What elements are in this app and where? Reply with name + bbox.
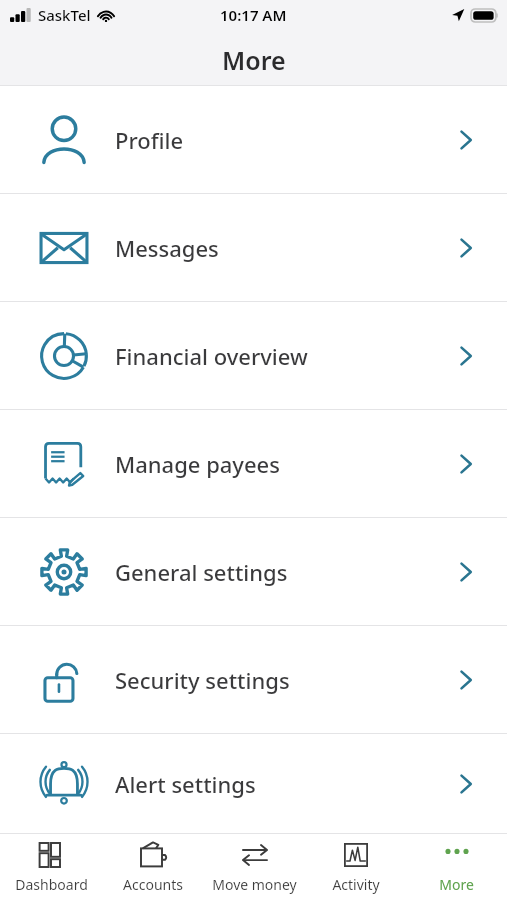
button[interactable]: Financial overview	[0, 302, 507, 409]
staticText: More	[439, 875, 474, 894]
staticText: General settings	[115, 557, 288, 587]
staticText: Activity	[332, 875, 380, 894]
staticText: 10:17 AM	[220, 5, 287, 25]
staticText: Messages	[115, 233, 219, 263]
button[interactable]: Alert settings	[0, 734, 507, 833]
staticText: Dashboard	[15, 875, 88, 894]
button[interactable]: Move money	[204, 834, 305, 900]
staticText: Security settings	[115, 665, 290, 695]
button[interactable]: Manage payees	[0, 410, 507, 517]
staticText: More	[222, 43, 286, 77]
button[interactable]: General settings	[0, 518, 507, 625]
button[interactable]: Messages	[0, 194, 507, 301]
button[interactable]: Profile	[0, 86, 507, 193]
staticText: SaskTel	[38, 5, 91, 25]
button[interactable]: Activity	[305, 834, 406, 900]
staticText: Profile	[115, 125, 184, 155]
button[interactable]: Dashboard	[0, 834, 102, 900]
staticText: Manage payees	[115, 449, 280, 479]
staticText: Move money	[212, 875, 297, 894]
button[interactable]: More	[406, 834, 507, 900]
button[interactable]: Security settings	[0, 626, 507, 733]
staticText: Alert settings	[115, 769, 256, 799]
button[interactable]: Accounts	[102, 834, 204, 900]
staticText: Financial overview	[115, 341, 308, 371]
staticText: Accounts	[123, 875, 183, 894]
